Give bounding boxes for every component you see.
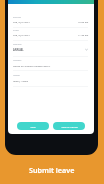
button[interactable] xyxy=(8,26,94,42)
staticText: Mike J. Abdul xyxy=(13,79,29,82)
button[interactable] xyxy=(8,56,94,72)
staticText: Comments xyxy=(13,59,22,61)
staticText: Tue, 6 Jul 2021 xyxy=(13,33,30,36)
staticText: Save & Submit xyxy=(61,125,78,128)
staticText: ANNUAL xyxy=(13,48,24,51)
staticText: Save xyxy=(30,125,36,128)
button[interactable] xyxy=(8,40,94,58)
staticText: Going on a beach holiday with f xyxy=(13,64,50,67)
staticText: 10:00 am xyxy=(78,20,89,23)
staticText: Leave Type xyxy=(13,43,22,45)
button[interactable] xyxy=(8,71,94,88)
other: Choose leave type xyxy=(85,48,88,51)
staticText: Approver xyxy=(13,74,20,76)
staticText: Submit leave xyxy=(29,165,75,175)
button[interactable]: Save & Submit xyxy=(53,122,85,130)
staticText: Tue, 6 Jul 2021 xyxy=(13,20,30,23)
button[interactable]: Save xyxy=(17,122,49,130)
staticText: 11:30 am xyxy=(78,33,89,36)
staticText: To Date xyxy=(13,29,19,31)
button[interactable] xyxy=(8,13,94,29)
staticText: From Date xyxy=(13,16,21,18)
